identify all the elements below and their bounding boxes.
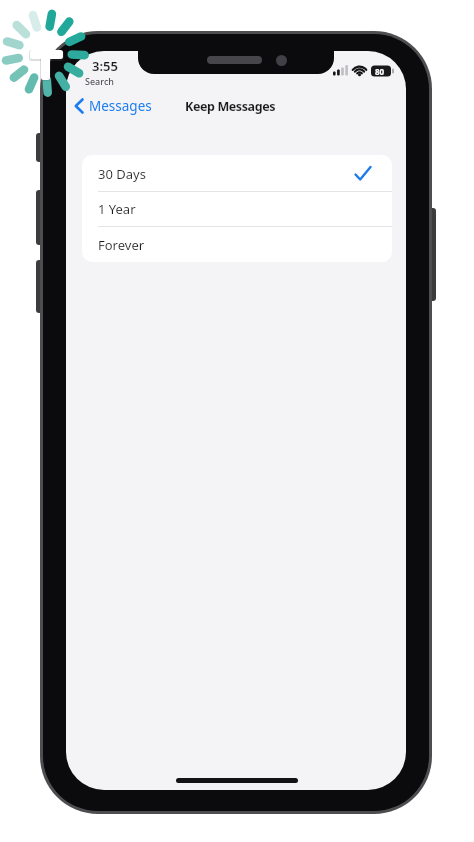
staticText: 80	[375, 66, 385, 77]
button[interactable]	[82, 226, 392, 262]
button[interactable]	[82, 155, 392, 191]
button[interactable]: Messages	[70, 96, 180, 118]
staticText: Search	[85, 75, 114, 87]
staticText: Forever	[98, 236, 145, 254]
staticText: 1 Year	[98, 200, 136, 218]
staticText: Messages	[89, 97, 152, 115]
staticText: 30 Days	[98, 165, 146, 183]
staticText: 3:55	[92, 57, 118, 75]
staticText: Keep Messages	[185, 98, 276, 115]
button[interactable]	[82, 191, 392, 226]
